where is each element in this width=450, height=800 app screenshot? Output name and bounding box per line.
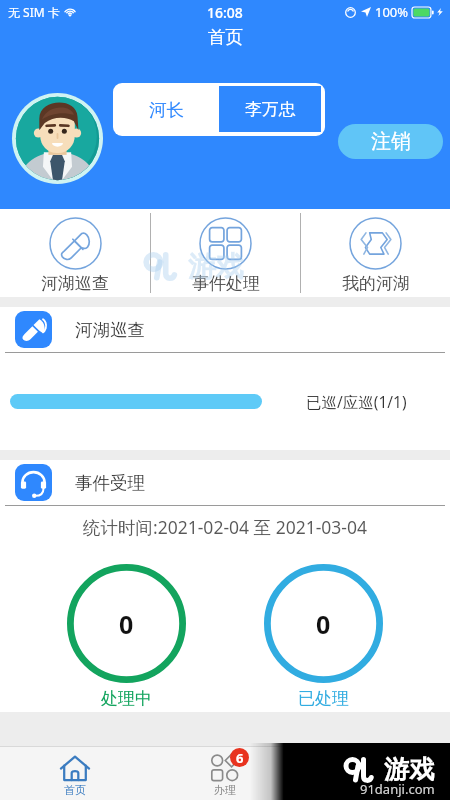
- button[interactable]: 河长: [113, 83, 219, 136]
- button[interactable]: 注销: [338, 124, 443, 159]
- staticText: 无 SIM 卡: [8, 4, 60, 20]
- staticText: 统计时间:2021-02-04 至 2021-03-04: [0, 515, 450, 539]
- button[interactable]: 事件处理: [151, 209, 300, 297]
- staticText: 李万忠: [245, 99, 296, 120]
- staticText: 16:08: [207, 3, 243, 22]
- button[interactable]: 办理: [150, 747, 300, 800]
- staticText: 100%: [375, 3, 409, 21]
- button[interactable]: 李万忠: [219, 86, 321, 132]
- staticText: 首页: [64, 783, 86, 797]
- staticText: 91danji.com: [360, 780, 435, 798]
- button[interactable]: 0: [66, 564, 186, 709]
- staticText: 已处理: [298, 688, 349, 709]
- staticText: 游戏: [188, 249, 244, 284]
- staticText: 我的: [364, 783, 386, 797]
- staticText: 游戏: [384, 754, 435, 786]
- staticText: 处理中: [101, 688, 152, 709]
- button[interactable]: 河湖巡查: [0, 209, 150, 297]
- staticText: 我的河湖: [342, 273, 410, 294]
- button[interactable]: 0: [263, 564, 383, 709]
- staticText: 注销: [371, 129, 411, 154]
- button[interactable]: 首页: [0, 747, 150, 800]
- staticText: 0: [119, 607, 134, 641]
- staticText: 事件处理: [192, 273, 260, 294]
- staticText: 办理: [214, 783, 236, 797]
- staticText: 事件受理: [75, 472, 145, 494]
- staticText: 已巡/应巡(1/1): [306, 391, 407, 412]
- staticText: 首页: [208, 26, 243, 48]
- staticText: 0: [316, 607, 331, 641]
- staticText: 6: [236, 749, 244, 767]
- staticText: 河长: [149, 99, 184, 121]
- staticText: 河湖巡查: [75, 319, 145, 341]
- button[interactable]: 我的: [300, 747, 450, 800]
- button[interactable]: 我的河湖: [301, 209, 450, 297]
- staticText: 河湖巡查: [41, 273, 109, 294]
